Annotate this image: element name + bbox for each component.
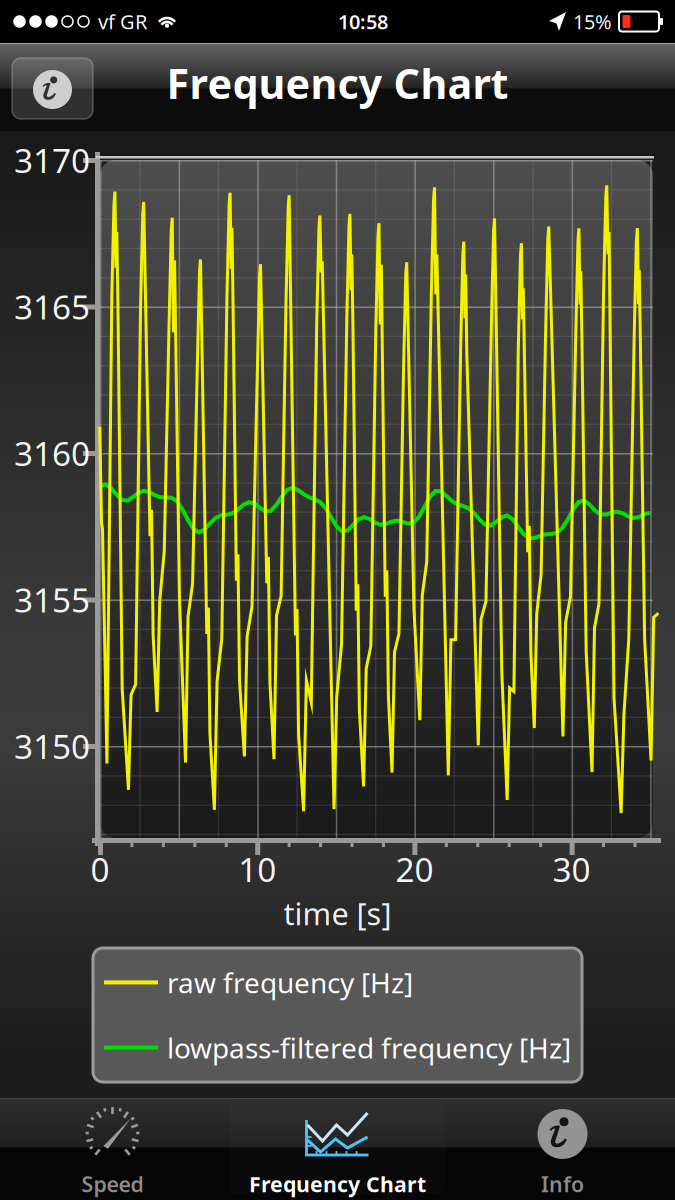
staticText: 3170 [14,138,90,182]
staticText: 15% [573,8,612,35]
staticText: Frequency Chart [249,1170,426,1198]
staticText: Speed [81,1170,143,1198]
staticText: Frequency Chart [166,56,508,110]
staticText: Info [541,1170,584,1198]
button[interactable]: Info [12,58,93,119]
staticText: 3160 [14,431,90,475]
staticText: 3155 [14,577,90,622]
staticText: 0 [90,847,109,891]
staticText: 10 [238,847,276,891]
staticText: vf GR [98,8,147,35]
staticText: 3165 [14,284,90,329]
button[interactable]: Speed [0,1098,225,1200]
staticText: 30 [553,847,591,891]
staticText: raw frequency [Hz] [167,964,413,1001]
staticText: 10:58 [338,8,388,35]
staticText: 20 [395,847,433,891]
staticText: 3150 [14,724,90,768]
button[interactable]: Frequency Chart [225,1098,450,1200]
button[interactable]: Info [450,1098,675,1200]
staticText: time [s] [283,893,391,934]
staticText: lowpass-filtered frequency [Hz] [167,1029,571,1066]
